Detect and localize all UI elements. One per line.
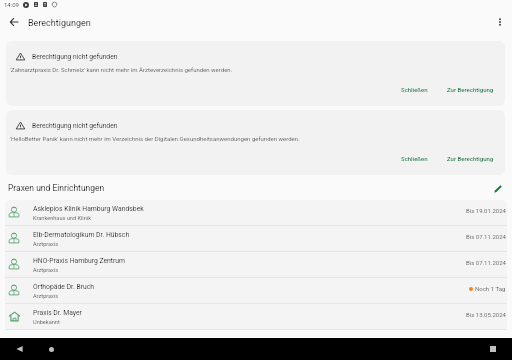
staticText: Bis 07.11.2024: [466, 233, 506, 240]
staticText: Krankenhaus und Klinik: [33, 215, 91, 222]
button[interactable]: HNO-Praxis Hamburg Zentrum: [5, 252, 507, 278]
button[interactable]: Schließen: [396, 84, 433, 95]
staticText: Bis 19.01.2024: [466, 207, 506, 214]
button[interactable]: Bearbeiten: [488, 179, 507, 198]
staticText: Schließen: [401, 155, 428, 162]
staticText: Noch 1 Tag: [475, 285, 506, 292]
button[interactable]: Mehr Optionen: [490, 12, 510, 32]
button[interactable]: Zurück: [11, 341, 27, 357]
button[interactable]: Schließen: [396, 153, 433, 164]
button[interactable]: Orthopäde Dr. Bruch: [5, 278, 507, 304]
staticText: HNO-Praxis Hamburg Zentrum: [33, 257, 126, 265]
staticText: Arztpraxis: [33, 241, 59, 248]
staticText: Zur Berechtigung: [447, 155, 494, 162]
button[interactable]: Praxis Dr. Mayer: [5, 304, 507, 330]
staticText: Bis 07.11.2024: [466, 259, 506, 266]
button[interactable]: Zurück: [4, 12, 24, 32]
button[interactable]: Übersicht: [485, 341, 501, 357]
staticText: Arztpraxis: [33, 293, 59, 300]
staticText: Bis 13.05.2024: [466, 311, 506, 318]
button[interactable]: Asklepios Klinik Hamburg Wandsbek: [5, 200, 507, 226]
staticText: Berechtigung nicht gefunden: [32, 122, 118, 130]
button[interactable]: Berechtigung nicht gefunden: [6, 41, 505, 106]
staticText: Praxen und Einrichtungen: [8, 183, 105, 193]
staticText: Zur Berechtigung: [447, 86, 494, 93]
staticText: Orthopäde Dr. Bruch: [33, 283, 95, 291]
staticText: 14:09: [4, 1, 19, 8]
staticText: Berechtigung nicht gefunden: [32, 53, 118, 61]
button[interactable]: Zur Berechtigung: [442, 153, 499, 164]
staticText: Elb-Dermatologikum Dr. Hübsch: [33, 231, 130, 239]
staticText: Unbekannt: [33, 319, 60, 326]
button[interactable]: Elb-Dermatologikum Dr. Hübsch: [5, 226, 507, 252]
staticText: 'Zahnarztpraxis Dr. Schmelz' kann nicht …: [10, 66, 233, 73]
staticText: Praxis Dr. Mayer: [33, 309, 82, 317]
staticText: 'HelloBetter Panik' kann nicht mehr im V…: [10, 135, 300, 142]
staticText: Berechtigungen: [28, 18, 91, 29]
staticText: Arztpraxis: [33, 267, 59, 274]
button[interactable]: Zur Berechtigung: [442, 84, 499, 95]
staticText: Schließen: [401, 86, 428, 93]
button[interactable]: Berechtigung nicht gefunden: [6, 110, 505, 175]
button[interactable]: Startseite: [43, 341, 59, 357]
staticText: Asklepios Klinik Hamburg Wandsbek: [33, 205, 144, 213]
